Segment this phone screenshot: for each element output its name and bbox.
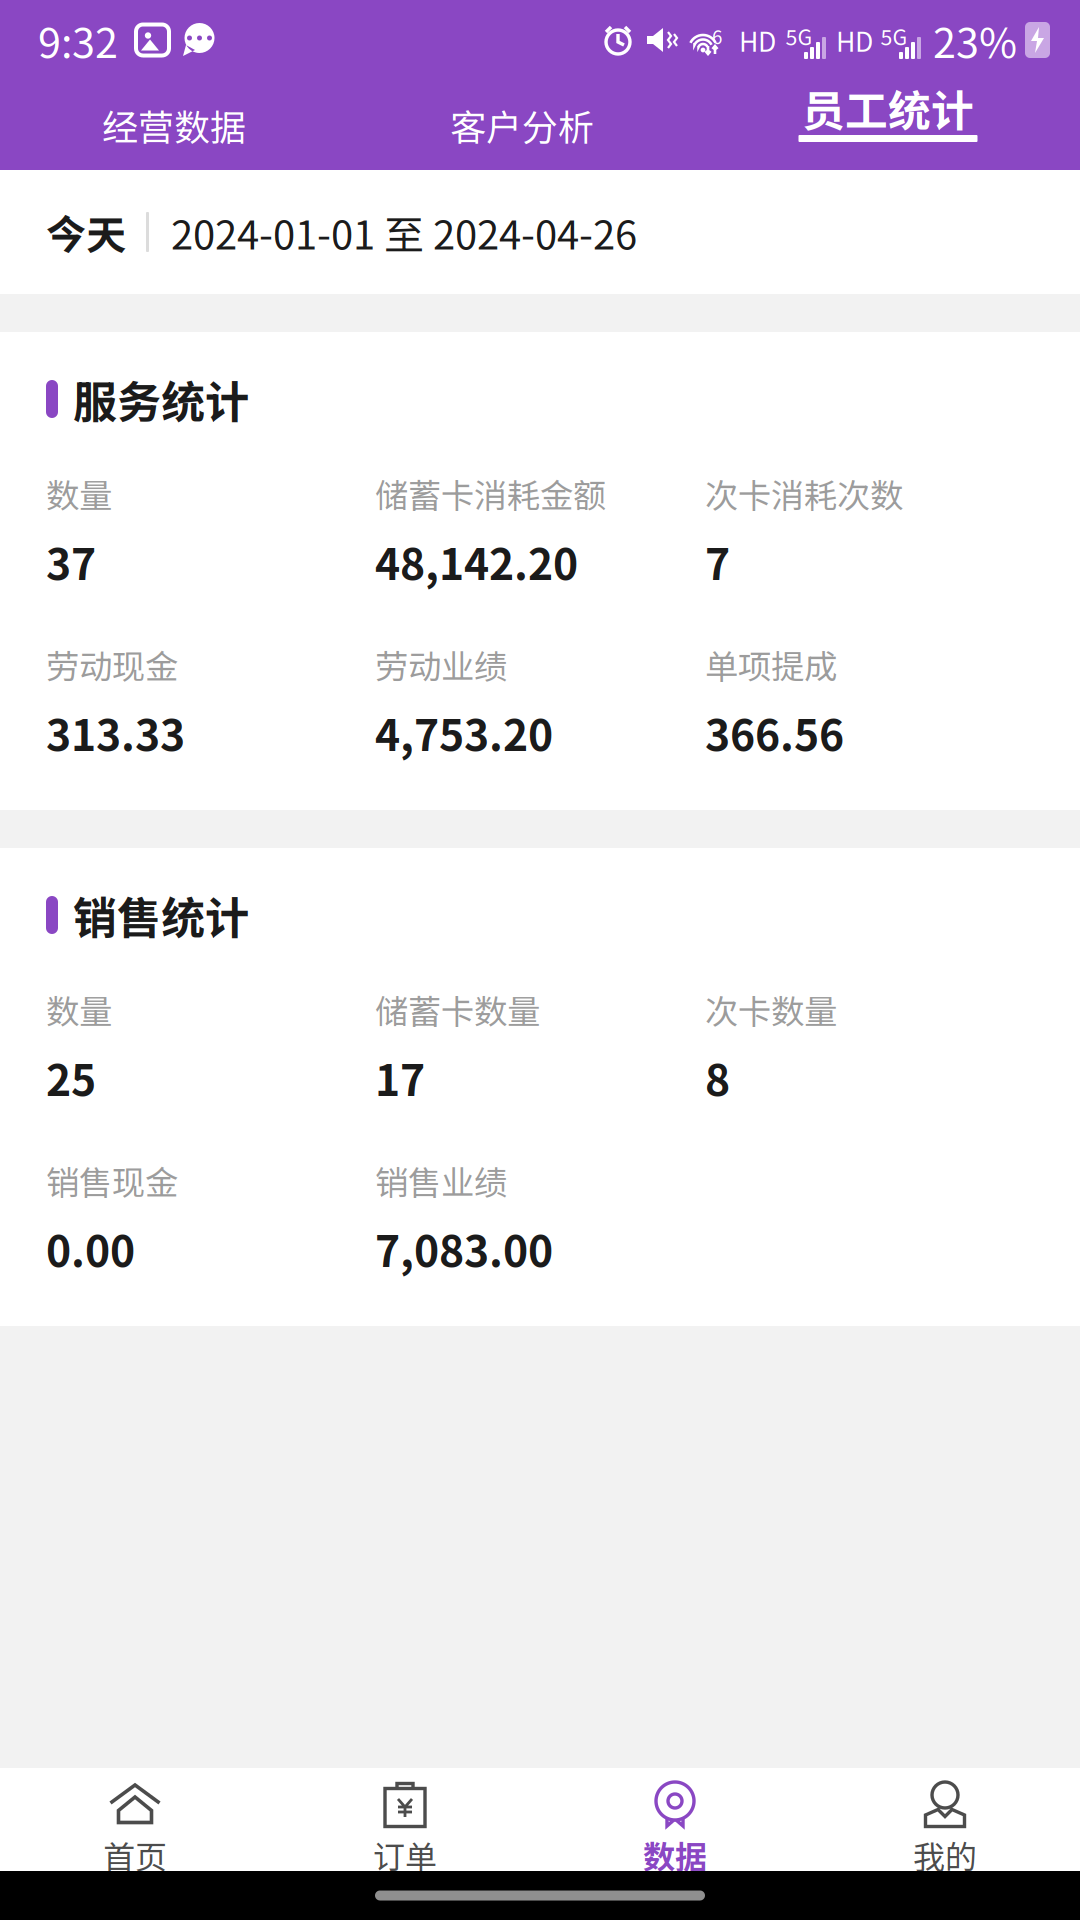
- staticText: 次卡消耗次数: [705, 469, 903, 518]
- staticText: 6: [712, 22, 722, 49]
- staticText: 8: [705, 1047, 730, 1108]
- button[interactable]: 经营数据: [0, 80, 348, 170]
- staticText: 数量: [46, 985, 112, 1034]
- staticText: 25: [46, 1047, 96, 1108]
- staticText: 7: [705, 531, 730, 592]
- staticText: HD: [836, 21, 873, 59]
- staticText: 数据: [643, 1832, 707, 1878]
- staticText: 0.00: [46, 1218, 135, 1279]
- button[interactable]: 首页: [0, 1768, 270, 1871]
- staticText: 48,142.20: [375, 531, 578, 592]
- staticText: 劳动业绩: [375, 640, 507, 689]
- staticText: 7,083.00: [375, 1218, 553, 1279]
- staticText: 我的: [913, 1832, 977, 1878]
- button[interactable]: 我的: [810, 1768, 1080, 1871]
- staticText: 订单: [373, 1832, 437, 1878]
- button[interactable]: 客户分析: [348, 80, 696, 170]
- staticText: 服务统计: [73, 367, 249, 431]
- staticText: 单项提成: [705, 640, 837, 689]
- staticText: 员工统计: [802, 77, 974, 139]
- staticText: 储蓄卡消耗金额: [375, 469, 606, 518]
- staticText: 23%: [933, 10, 1017, 70]
- staticText: 首页: [103, 1832, 167, 1878]
- staticText: 313.33: [46, 702, 185, 763]
- staticText: 17: [375, 1047, 425, 1108]
- staticText: HD: [739, 21, 776, 59]
- staticText: 366.56: [705, 702, 844, 763]
- staticText: 销售现金: [46, 1156, 178, 1205]
- staticText: 5G: [880, 21, 907, 51]
- button[interactable]: 员工统计: [696, 80, 1080, 170]
- staticText: 数量: [46, 469, 112, 518]
- button[interactable]: 今天: [0, 170, 1080, 294]
- staticText: 次卡数量: [705, 985, 837, 1034]
- staticText: 5G: [785, 21, 812, 51]
- staticText: 销售业绩: [375, 1156, 507, 1205]
- staticText: 37: [46, 531, 96, 592]
- button[interactable]: 订单: [270, 1768, 540, 1871]
- button[interactable]: 数据: [540, 1768, 810, 1871]
- staticText: 经营数据: [102, 99, 246, 151]
- staticText: 2024-01-01 至 2024-04-26: [171, 203, 637, 261]
- staticText: 销售统计: [73, 883, 249, 947]
- staticText: 9:32: [38, 10, 118, 70]
- staticText: 4,753.20: [375, 702, 553, 763]
- staticText: 客户分析: [450, 99, 594, 151]
- staticText: 储蓄卡数量: [375, 985, 540, 1034]
- staticText: 今天: [46, 203, 126, 261]
- staticText: 劳动现金: [46, 640, 178, 689]
